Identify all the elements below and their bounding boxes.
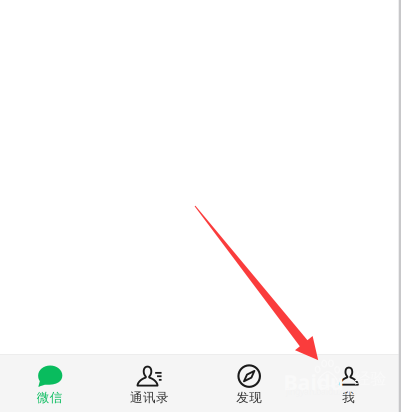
staticText: 经验 [354, 368, 386, 389]
button[interactable]: 微信 [0, 362, 100, 405]
staticText: 发现 [236, 390, 262, 405]
button[interactable]: 发现 [199, 362, 299, 405]
button[interactable]: 我 [299, 362, 399, 405]
staticText: 通讯录 [130, 390, 169, 405]
staticText: 微信 [37, 390, 63, 405]
staticText: 我 [342, 390, 355, 405]
staticText: jingyan.baidu.com [286, 385, 357, 397]
staticText: du [317, 367, 344, 397]
button[interactable]: 通讯录 [100, 362, 199, 405]
